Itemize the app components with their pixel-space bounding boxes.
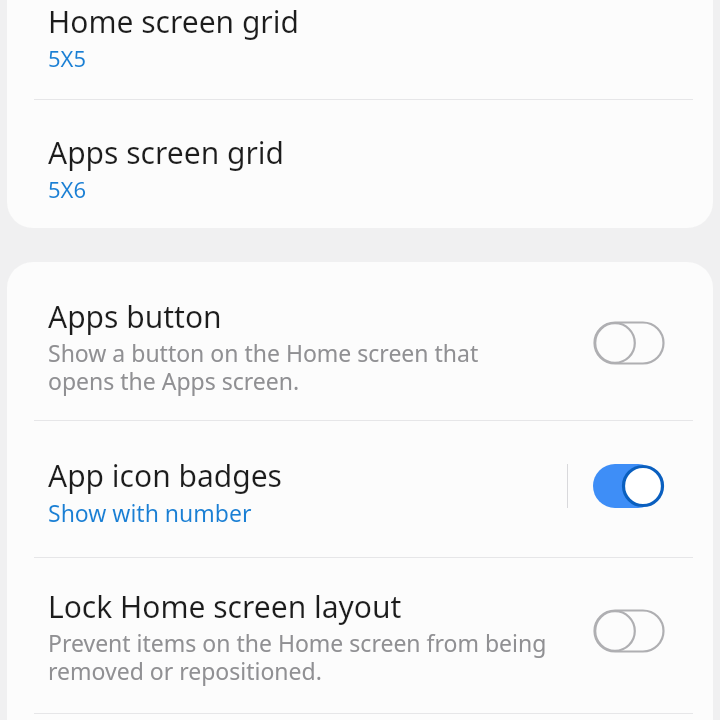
staticText: 5X6	[48, 174, 87, 204]
button[interactable]	[7, 558, 713, 713]
button[interactable]: Apps button toggle, off	[593, 321, 665, 365]
button[interactable]: App icon badges toggle, on	[593, 464, 665, 508]
button[interactable]	[7, 262, 713, 420]
button[interactable]	[7, 0, 713, 139]
button[interactable]: Lock Home screen layout toggle, off	[593, 609, 665, 653]
staticText: 5X5	[48, 43, 87, 73]
button[interactable]	[7, 100, 713, 228]
staticText: Show a button on the Home screen that op…	[48, 337, 548, 397]
staticText: Prevent items on the Home screen from be…	[48, 627, 548, 687]
staticText: Lock Home screen layout	[48, 586, 402, 626]
button[interactable]	[7, 421, 713, 557]
staticText: Show with number	[48, 497, 252, 527]
staticText: Apps screen grid	[48, 132, 285, 172]
staticText: App icon badges	[48, 455, 282, 495]
staticText: Apps button	[48, 296, 222, 336]
staticText: Home screen grid	[48, 1, 299, 41]
